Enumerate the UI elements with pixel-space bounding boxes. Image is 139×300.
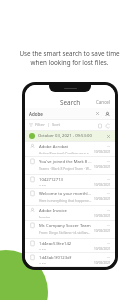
staticText: 10/03/2021 xyxy=(94,214,111,218)
staticText: Use the smart search to save time when l… xyxy=(6,49,133,67)
button[interactable]: Adobe Invoice xyxy=(25,206,115,220)
staticText: 2 Mb xyxy=(39,184,47,186)
staticText: 10/03/2021 xyxy=(94,183,111,186)
staticText: 1d4eac53fee142 xyxy=(39,241,72,247)
button[interactable]: Attachments xyxy=(96,122,103,129)
staticText: Adobe Acrobat xyxy=(39,144,69,150)
button[interactable]: Refresh xyxy=(104,122,111,129)
button[interactable]: You've joined the Mark 8 Project Team gr… xyxy=(25,157,115,174)
staticText: ··· xyxy=(107,241,111,246)
staticText: 1d43ab1f0123df xyxy=(39,255,72,261)
staticText: Adobe xyxy=(29,111,43,117)
staticText: October 03, 2021 - 09:53:00 xyxy=(38,133,105,139)
staticText: ··· xyxy=(107,255,111,260)
button[interactable]: 1042712713 xyxy=(25,175,115,188)
staticText: Mr. Company Soccer Team xyxy=(39,223,91,229)
button[interactable]: Welcome to your monthly digest xyxy=(25,189,115,205)
staticText: From: Diego Siciliano <d.siciliano@mail.… xyxy=(39,230,92,234)
button[interactable]: Dismiss xyxy=(105,133,111,139)
staticText: 10/03/2021 xyxy=(94,229,111,233)
button[interactable]: Contacts xyxy=(103,110,111,118)
staticText: 2 Mb xyxy=(39,248,47,250)
staticText: Teams · Mark 8 Project Team · Welcome to… xyxy=(39,166,92,170)
button[interactable]: Adobe Acrobat xyxy=(25,142,115,156)
staticText: ··· xyxy=(107,159,111,164)
staticText: 10/03/2021 xyxy=(94,261,111,264)
button[interactable]: October 03, 2021 - 09:53:00 xyxy=(25,131,115,141)
staticText: Search xyxy=(60,98,81,107)
staticText: ··· xyxy=(107,177,111,182)
staticText: 10/03/2021 xyxy=(94,197,111,201)
staticText: Welcome to your monthly digest xyxy=(39,191,92,197)
staticText: You've joined the Mark 8 Project Team gr… xyxy=(39,159,92,165)
staticText: 10/03/2021 xyxy=(94,150,111,154)
button[interactable]: Clear search xyxy=(94,110,101,117)
button[interactable]: Filter xyxy=(25,120,115,130)
staticText: Filter xyxy=(35,122,45,128)
button[interactable]: Mr. Company Soccer Team xyxy=(25,221,115,238)
staticText: Action Required: Confirm your email ad… xyxy=(39,151,92,154)
button[interactable]: Cancel xyxy=(92,97,115,107)
staticText: Sort xyxy=(52,122,61,128)
staticText: 2 Mb xyxy=(39,262,47,264)
button[interactable]: 1d4eac53fee142 xyxy=(25,239,115,252)
staticText: Here is everything that happened this mo… xyxy=(39,198,92,202)
staticText: 10/03/2021 xyxy=(94,165,111,169)
staticText: ··· xyxy=(107,144,111,149)
staticText: ··· xyxy=(107,208,111,213)
staticText: ··· xyxy=(107,191,111,196)
button[interactable]: Adobe xyxy=(25,108,115,119)
staticText: ··· xyxy=(107,223,111,228)
staticText: 10/03/2021 xyxy=(94,247,111,250)
staticText: Adobe Invoice xyxy=(39,208,67,214)
button[interactable]: 1d43ab1f0123df xyxy=(25,253,115,266)
staticText: 1042712713 xyxy=(39,177,63,183)
staticText: Cancel xyxy=(96,99,111,105)
staticText: Invoice xyxy=(39,215,51,218)
